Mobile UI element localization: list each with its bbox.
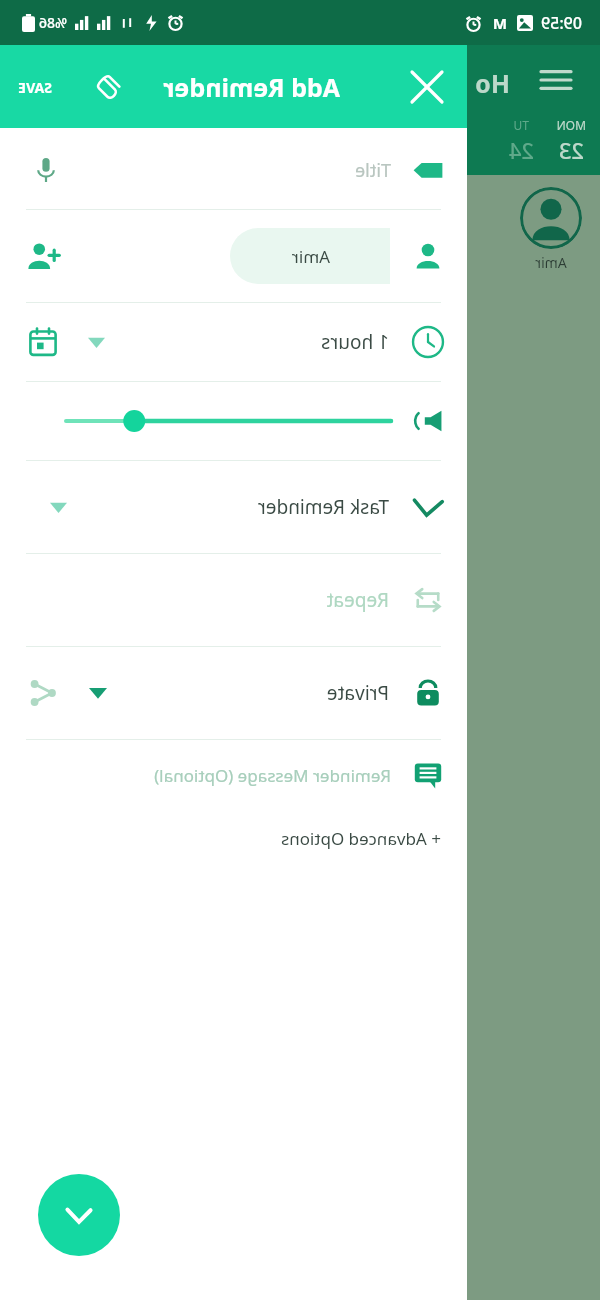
button[interactable]: Tag — [403, 145, 453, 195]
button[interactable]: SAVE — [18, 78, 52, 97]
button[interactable] — [66, 401, 391, 441]
staticText: %86 — [39, 13, 67, 32]
button[interactable]: Contact — [403, 231, 453, 281]
button[interactable]: Close — [401, 61, 453, 113]
staticText: Add Reminder — [163, 70, 340, 104]
button[interactable]: Reminder type — [403, 482, 453, 532]
staticText: Repeat — [326, 587, 389, 613]
staticText: Task Reminder — [257, 494, 389, 520]
button[interactable]: Repeat — [403, 575, 453, 625]
staticText: Reminder Message (Optional) — [154, 764, 391, 787]
button[interactable]: Menu — [534, 58, 578, 102]
button[interactable]: + Advanced Options — [275, 823, 447, 854]
button[interactable]: Amir — [230, 228, 390, 284]
button[interactable]: Privacy — [403, 668, 453, 718]
staticText: 24 — [508, 135, 534, 165]
button[interactable]: Attach — [84, 63, 132, 111]
staticText: M — [492, 13, 507, 33]
button[interactable]: Calendar — [18, 317, 68, 367]
staticText: 09:59 — [541, 12, 582, 34]
staticText: Amir — [535, 253, 567, 272]
button[interactable]: Message — [403, 750, 453, 800]
button[interactable]: Voice input — [22, 146, 70, 194]
staticText: 23 — [558, 135, 584, 165]
button[interactable]: Choose unit — [76, 322, 116, 362]
staticText: Amir — [291, 245, 330, 268]
staticText: MON — [556, 117, 586, 133]
staticText: Title — [355, 158, 391, 183]
staticText: TU — [513, 117, 529, 133]
staticText: Ho — [475, 66, 510, 100]
button[interactable]: Time — [403, 317, 453, 367]
staticText: SAVE — [18, 78, 52, 97]
button[interactable]: Add person — [18, 230, 70, 282]
staticText: 1 hours — [321, 329, 389, 355]
staticText: Private — [326, 680, 389, 706]
button[interactable]: Share — [18, 668, 68, 718]
button[interactable]: Choose type — [36, 485, 80, 529]
button[interactable]: Collapse — [38, 1174, 120, 1256]
staticText: + Advanced Options — [281, 827, 441, 850]
button[interactable] — [520, 187, 582, 249]
button[interactable]: Volume — [403, 396, 453, 446]
button[interactable]: Choose privacy — [78, 673, 118, 713]
